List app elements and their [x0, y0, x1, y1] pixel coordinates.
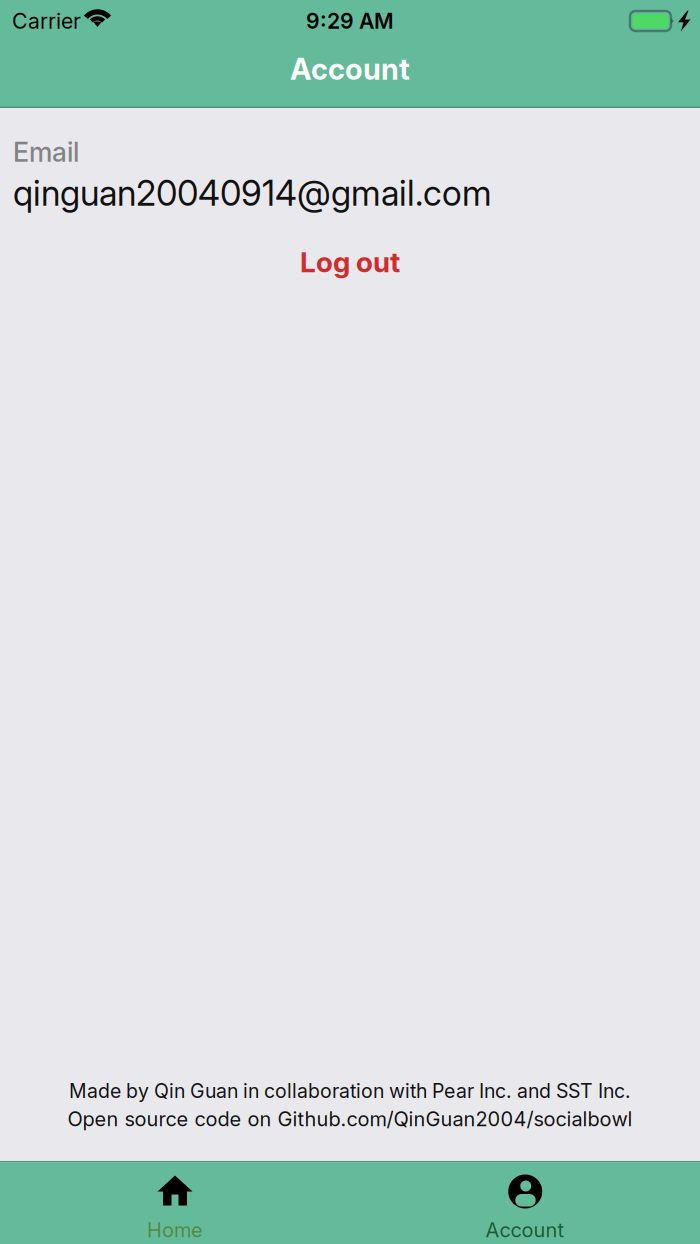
button[interactable]: Home	[0, 1162, 350, 1244]
button[interactable]: Log out	[0, 236, 700, 288]
staticText: Email	[13, 136, 79, 168]
button[interactable]: Account	[350, 1162, 700, 1244]
staticText: Open source code on Github.com/QinGuan20…	[67, 1107, 632, 1131]
staticText: Carrier	[12, 8, 81, 34]
staticText: Made by Qin Guan in collaboration with P…	[69, 1079, 631, 1103]
staticText: Home	[147, 1218, 203, 1242]
staticText: Account	[485, 1218, 564, 1242]
staticText: Log out	[300, 245, 400, 279]
staticText: qinguan20040914@gmail.com	[13, 172, 492, 214]
staticText: Account	[290, 51, 410, 87]
staticText: 9:29 AM	[306, 8, 394, 34]
